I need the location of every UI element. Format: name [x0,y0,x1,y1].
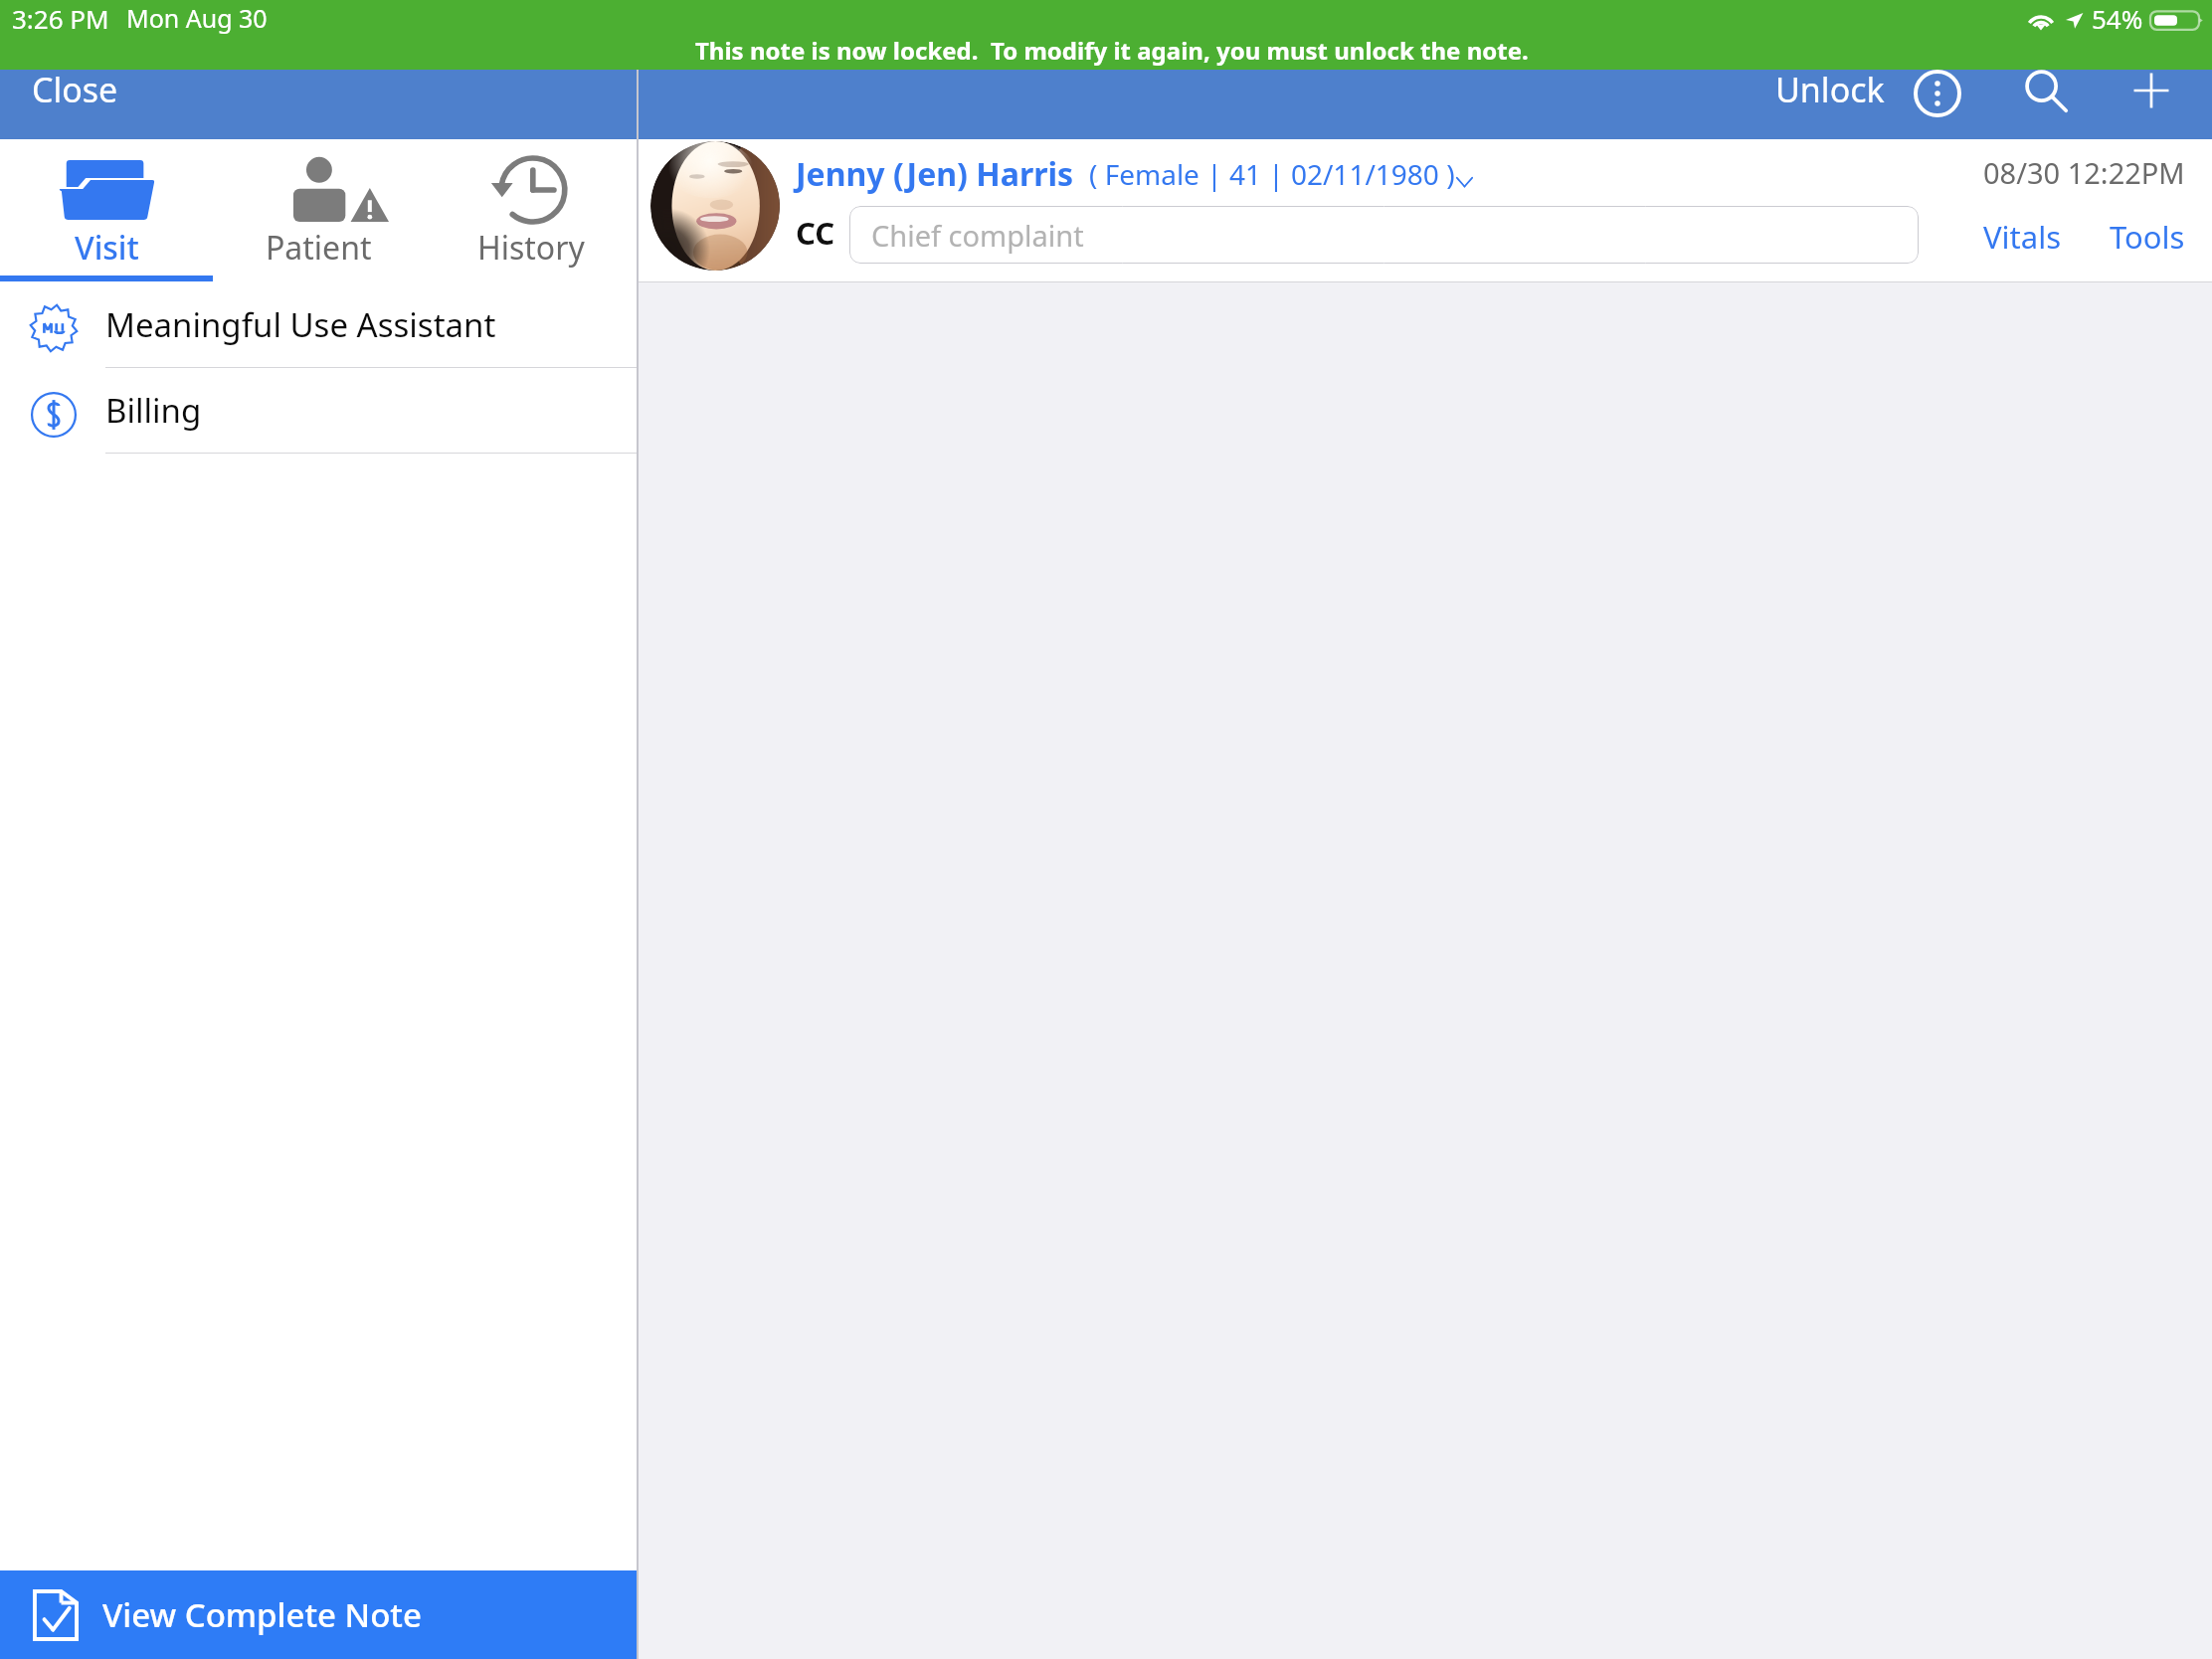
button[interactable]: History [425,139,637,281]
button[interactable]: Search [2012,57,2080,124]
button[interactable]: Meaningful Use Assistant [0,281,637,368]
staticText: Visit [75,226,139,270]
staticText: ( Female | 41 | 02/11/1980 ) [1089,155,1455,193]
button[interactable]: Tools [2100,208,2195,266]
button[interactable]: Patient photo [650,141,780,271]
staticText: CC [796,212,835,254]
staticText: Meaningful Use Assistant [105,302,496,347]
button[interactable]: Visit [0,139,213,281]
staticText: 3:26 PM [12,1,109,36]
button[interactable]: Jenny (Jen) Harris [796,152,1074,196]
staticText: 54% [2092,1,2143,36]
staticText: Vitals [1983,216,2062,258]
button[interactable]: Add [2118,57,2185,124]
button[interactable]: More options [1904,60,1971,127]
button[interactable]: Close [0,70,637,139]
button[interactable]: Billing [0,368,637,454]
button[interactable]: View Complete Note [0,1570,637,1659]
staticText: 08/30 12:22PM [1983,153,2185,192]
button[interactable]: Chief complaint [849,206,1919,264]
staticText: This note is now locked. To modify it ag… [695,34,1529,67]
button[interactable]: Patient [213,139,425,281]
button[interactable]: Unlock [1763,57,1897,122]
button[interactable]: ( Female | 41 | 02/11/1980 ) [1089,155,1474,193]
staticText: Patient [266,226,372,270]
staticText: Tools [2110,216,2185,258]
staticText: Billing [105,388,202,433]
staticText: Unlock [1775,67,1885,112]
staticText: Close [32,67,118,112]
staticText: Mon Aug 30 [126,1,268,35]
staticText: History [477,226,585,270]
button[interactable]: Vitals [1973,208,2072,266]
staticText: Jenny (Jen) Harris [796,152,1074,196]
staticText: View Complete Note [102,1592,422,1637]
staticText: Chief complaint [871,216,1084,255]
